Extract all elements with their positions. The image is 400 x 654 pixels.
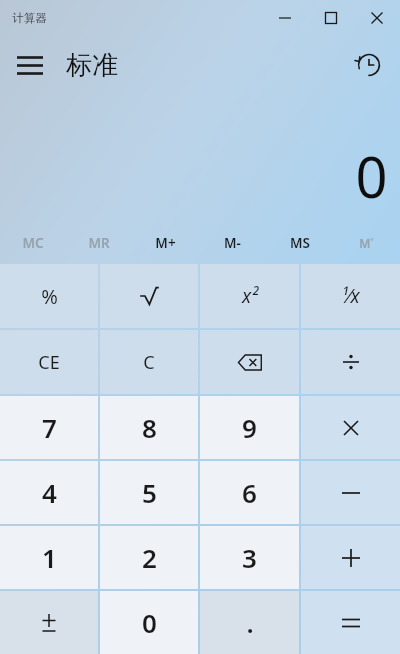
button[interactable]: ± [0,591,98,654]
staticText: 6 [242,475,257,510]
button[interactable]: 3 [200,526,299,589]
button[interactable]: ¹⁄x [301,264,400,328]
staticText: % [41,283,58,310]
button[interactable]: ⌫ [200,330,299,394]
button[interactable]: ÷ [301,330,400,394]
staticText: 9 [242,410,257,445]
button[interactable]: % [0,264,98,328]
staticText: 0 [355,138,388,214]
staticText: 计算器 [12,11,47,25]
button[interactable]: MR [66,222,132,264]
staticText: 7 [42,410,57,445]
button[interactable]: × [301,396,400,459]
button[interactable]: = [301,591,400,654]
staticText: MR [88,234,110,252]
button[interactable]: Menu [8,43,52,87]
staticText: 8 [142,410,157,445]
button[interactable]: CE [0,330,98,394]
button[interactable]: Close [354,2,400,34]
button[interactable]: M+ [132,222,199,264]
staticText: M- [224,234,241,252]
button[interactable]: 2 [100,526,198,589]
button[interactable]: Minimize [262,2,308,34]
button[interactable]: x² [200,264,299,328]
button[interactable]: 9 [200,396,299,459]
button[interactable]: 4 [0,461,98,524]
button[interactable]: 0 [100,591,198,654]
staticText: M˅ [359,235,374,251]
button[interactable]: Maximize [308,2,354,34]
staticText: 0 [142,605,157,640]
button[interactable]: 1 [0,526,98,589]
button[interactable]: √ [100,264,198,328]
staticText: 标准 [66,49,118,82]
button[interactable]: . [200,591,299,654]
button[interactable]: C [100,330,198,394]
button[interactable]: History [348,44,390,86]
staticText: CE [38,350,60,375]
staticText: 3 [242,540,257,575]
button[interactable]: 5 [100,461,198,524]
staticText: ¹⁄x [341,283,360,309]
staticText: 4 [42,475,57,510]
staticText: C [143,350,155,375]
staticText: MS [290,234,310,252]
staticText: M+ [155,234,176,252]
button[interactable]: M- [199,222,266,264]
button[interactable]: 7 [0,396,98,459]
button[interactable]: M˅ [333,222,400,264]
staticText: . [246,605,254,640]
staticText: x² [242,283,258,309]
button[interactable]: + [301,526,400,589]
staticText: MC [22,234,44,252]
button[interactable]: MC [0,222,66,264]
staticText: 2 [142,540,157,575]
staticText: 1 [42,540,57,575]
button[interactable]: − [301,461,400,524]
button[interactable]: MS [266,222,333,264]
button[interactable]: 6 [200,461,299,524]
staticText: 5 [142,475,157,510]
button[interactable]: 8 [100,396,198,459]
